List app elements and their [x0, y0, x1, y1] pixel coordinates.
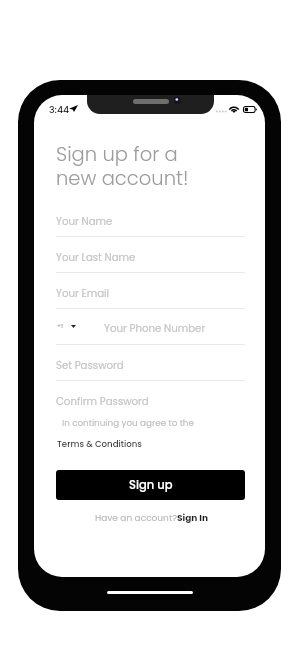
button[interactable]: Your Last Name: [56, 246, 245, 273]
staticText: Confirm Password: [56, 394, 149, 408]
button[interactable]: Your Name: [56, 210, 245, 237]
staticText: +1: [57, 322, 64, 330]
other: Location in use: [69, 105, 78, 112]
button[interactable]: Set Password: [56, 354, 245, 381]
staticText: Your Last Name: [56, 250, 136, 264]
other: Select country code: [71, 325, 76, 328]
button[interactable]: +1: [56, 318, 245, 345]
other: Wi-Fi: [229, 106, 239, 113]
staticText: Sign up for a new account!: [56, 141, 189, 192]
staticText: Sign In: [177, 512, 208, 525]
other: Cellular signal: [216, 110, 226, 113]
staticText: Your Phone Number: [104, 321, 206, 335]
staticText: Your Name: [56, 214, 113, 228]
other: Battery: [243, 106, 257, 113]
button[interactable]: Your Email: [56, 282, 245, 309]
button[interactable]: Sign up: [56, 470, 245, 500]
button[interactable]: Confirm Password: [56, 390, 245, 417]
button[interactable]: Sign In: [177, 512, 208, 525]
staticText: Set Password: [56, 358, 124, 372]
staticText: Have an account?: [95, 512, 177, 525]
staticText: Sign up: [129, 477, 173, 493]
staticText: Your Email: [56, 286, 110, 300]
staticText: 3:44: [49, 103, 70, 116]
staticText: Terms & Conditions: [57, 438, 142, 450]
button[interactable]: Terms & Conditions: [57, 438, 142, 450]
staticText: In continuing you agree to the: [62, 417, 194, 429]
